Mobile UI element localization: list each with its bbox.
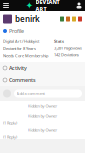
staticText: ART	[35, 5, 46, 13]
staticText: Hidden by Owner	[27, 127, 57, 133]
staticText: Profile	[9, 27, 24, 35]
staticText: 3,281 Pageviews	[54, 45, 82, 51]
staticText: benirk	[15, 14, 40, 24]
button[interactable]: Menu	[0, 0, 12, 11]
staticText: Deviant for 8 Years	[3, 46, 36, 51]
staticText: Comments	[9, 76, 36, 84]
button[interactable]: Profile	[0, 27, 27, 35]
staticText: Needs Core Membership	[3, 53, 48, 58]
button[interactable]: Account	[73, 0, 85, 11]
staticText: Hidden by Owner	[27, 113, 57, 119]
staticText: Add a comment	[16, 91, 44, 96]
staticText: 142 Deviations	[54, 52, 79, 57]
staticText: Stats	[54, 38, 64, 44]
button[interactable]: Add a comment	[14, 89, 82, 97]
staticText: DEVIANT	[35, 0, 59, 5]
staticText: ✦	[25, 0, 33, 11]
staticText: Hidden by Owner	[27, 103, 57, 109]
staticText: (1 Reply)	[3, 134, 17, 140]
staticText: Activity	[9, 64, 27, 72]
staticText: Digital Art / Hobbyist	[3, 38, 39, 44]
staticText: (1 Reply)	[3, 120, 17, 126]
